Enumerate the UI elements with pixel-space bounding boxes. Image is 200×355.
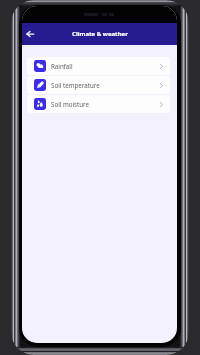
button[interactable]: Back bbox=[22, 26, 38, 42]
button[interactable]: Soil moisture bbox=[27, 95, 170, 113]
staticText: Soil temperature bbox=[51, 81, 100, 89]
staticText: Rainfall bbox=[51, 62, 73, 70]
staticText: Soil moisture bbox=[51, 100, 90, 108]
staticText: Climate & weather bbox=[72, 30, 128, 38]
button[interactable]: Rainfall bbox=[27, 57, 170, 75]
button[interactable]: Soil temperature bbox=[27, 76, 170, 94]
